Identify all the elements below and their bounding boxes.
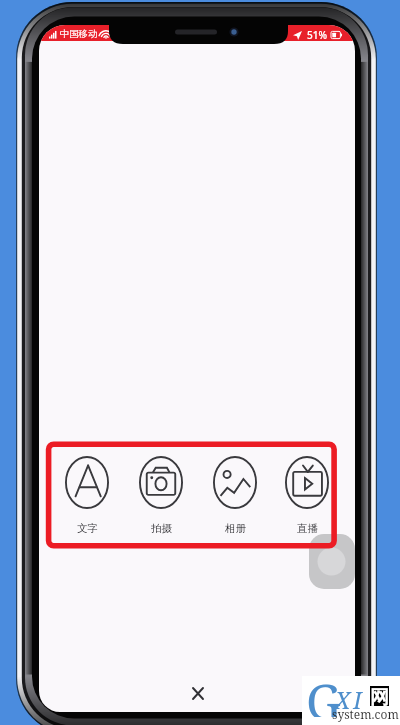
staticText: 文字 — [77, 522, 98, 535]
button[interactable]: AssistiveTouch — [309, 534, 355, 589]
staticText: XI — [335, 684, 365, 715]
staticText: 直播 — [297, 522, 318, 535]
staticText: 拍摄 — [151, 522, 172, 535]
button[interactable]: Close — [180, 675, 216, 711]
button[interactable]: 直播 — [275, 452, 339, 536]
staticText: 中国移动 — [60, 28, 98, 40]
staticText: 51% — [307, 28, 327, 42]
button[interactable]: 文字 — [55, 452, 119, 536]
staticText: system.com — [332, 706, 399, 722]
staticText: G — [306, 668, 341, 717]
button[interactable]: 相册 — [203, 452, 267, 536]
staticText: 网 — [370, 686, 389, 706]
staticText: 相册 — [225, 522, 246, 535]
button[interactable]: 拍摄 — [129, 452, 193, 536]
